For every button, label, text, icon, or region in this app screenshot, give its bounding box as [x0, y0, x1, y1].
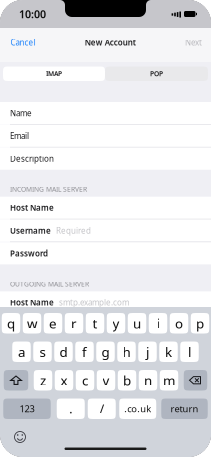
staticText: p — [196, 314, 204, 332]
button[interactable]: 123 — [3, 398, 51, 419]
button[interactable]: u — [128, 313, 146, 333]
staticText: k — [165, 343, 172, 361]
button[interactable]: a — [12, 341, 31, 362]
staticText: l — [188, 343, 191, 361]
staticText: j — [146, 343, 149, 361]
staticText: . — [69, 401, 72, 417]
button[interactable]: POP — [105, 66, 208, 81]
staticText: Username — [10, 225, 51, 236]
button[interactable]: g — [96, 341, 115, 362]
button[interactable]: Description — [0, 148, 211, 170]
staticText: smtp.example.com — [59, 297, 129, 308]
staticText: Host Name — [10, 202, 54, 213]
staticText: z — [40, 371, 46, 389]
staticText: Host Name — [10, 297, 54, 308]
staticText: q — [7, 314, 15, 332]
button[interactable]: z — [34, 370, 52, 390]
staticText: Description — [10, 153, 54, 164]
staticText: INCOMING MAIL SERVER — [10, 185, 87, 194]
button[interactable]: Username — [0, 219, 211, 242]
button[interactable]: p — [191, 313, 209, 333]
staticText: OUTGOING MAIL SERVER — [10, 279, 89, 288]
button[interactable]: Next — [185, 32, 211, 53]
button[interactable]: q — [2, 313, 20, 333]
staticText: f — [82, 343, 87, 361]
staticText: New Account — [85, 37, 136, 48]
staticText: Required — [56, 225, 91, 236]
button[interactable]: n — [139, 370, 157, 390]
button[interactable]: d — [54, 341, 73, 362]
button[interactable]: Name — [0, 102, 211, 124]
staticText: n — [144, 371, 152, 389]
button[interactable]: Host Name — [0, 291, 211, 313]
staticText: a — [18, 343, 25, 361]
staticText: x — [60, 371, 67, 389]
staticText: t — [92, 314, 97, 332]
button[interactable]: o — [170, 313, 188, 333]
staticText: i — [156, 314, 159, 332]
button[interactable]: Host Name — [0, 197, 211, 219]
button[interactable]: h — [117, 341, 136, 362]
button[interactable]: v — [97, 370, 115, 390]
staticText: 10:00 — [19, 7, 46, 21]
button[interactable]: j — [138, 341, 157, 362]
staticText: g — [101, 343, 109, 361]
button[interactable]: m — [160, 370, 178, 390]
button[interactable]: c — [76, 370, 94, 390]
staticText: r — [71, 314, 77, 332]
staticText: Password — [10, 248, 48, 259]
button[interactable]: Email — [0, 125, 211, 147]
button[interactable]: y — [107, 313, 125, 333]
staticText: o — [175, 314, 183, 332]
button[interactable]: Shift — [4, 370, 28, 390]
button[interactable]: s — [33, 341, 52, 362]
staticText: e — [49, 314, 57, 332]
staticText: b — [123, 371, 131, 389]
button[interactable]: Password — [0, 242, 211, 264]
staticText: Next — [185, 37, 202, 48]
button[interactable]: r — [65, 313, 83, 333]
button[interactable]: w — [23, 313, 41, 333]
button[interactable]: e — [44, 313, 62, 333]
staticText: Email — [10, 130, 29, 141]
staticText: / — [100, 401, 104, 417]
button[interactable]: Emoji keyboard — [0, 429, 28, 445]
button[interactable]: / — [88, 398, 116, 419]
button[interactable]: k — [159, 341, 178, 362]
button[interactable]: Cancel — [0, 32, 35, 53]
staticText: c — [82, 371, 88, 389]
staticText: IMAP — [46, 69, 62, 78]
staticText: .co.uk — [124, 403, 151, 415]
button[interactable]: x — [55, 370, 73, 390]
staticText: y — [112, 314, 119, 332]
button[interactable]: f — [75, 341, 94, 362]
button[interactable]: IMAP — [3, 66, 105, 81]
button[interactable]: .co.uk — [119, 398, 156, 419]
button[interactable]: b — [118, 370, 136, 390]
button[interactable]: t — [86, 313, 104, 333]
staticText: 123 — [19, 403, 34, 415]
button[interactable]: i — [149, 313, 167, 333]
button[interactable]: l — [180, 341, 199, 362]
staticText: w — [27, 314, 37, 332]
staticText: h — [122, 343, 130, 361]
staticText: Cancel — [10, 37, 35, 48]
staticText: return — [170, 403, 198, 415]
staticText: POP — [150, 69, 163, 78]
button[interactable]: Delete — [184, 370, 207, 390]
button[interactable]: return — [161, 398, 208, 419]
staticText: u — [133, 314, 141, 332]
staticText: d — [59, 343, 67, 361]
staticText: v — [102, 371, 109, 389]
staticText: s — [39, 343, 45, 361]
staticText: Name — [10, 108, 32, 118]
staticText: m — [163, 371, 175, 389]
button[interactable]: . — [57, 398, 85, 419]
